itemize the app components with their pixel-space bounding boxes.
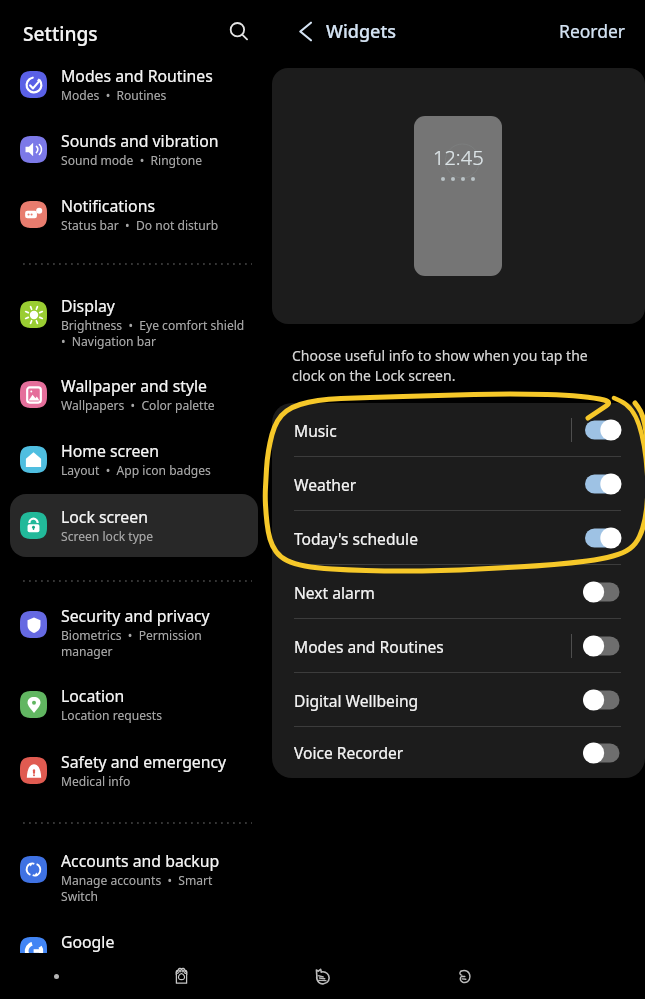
button[interactable]: Reorder: [555, 13, 630, 49]
button[interactable]: Recents: [163, 958, 199, 994]
button[interactable]: Back: [446, 958, 482, 994]
staticText: Brightness • Eye comfort shield: [61, 317, 245, 333]
staticText: Next alarm: [294, 582, 375, 603]
button[interactable]: Search: [219, 13, 259, 53]
staticText: Location requests: [61, 707, 162, 723]
staticText: 12:45: [433, 144, 484, 171]
button[interactable]: Wallpaper and style: [10, 363, 258, 426]
staticText: Sound mode • Ringtone: [61, 152, 203, 168]
staticText: Accounts and backup: [61, 850, 220, 872]
staticText: Biometrics • Permission: [61, 627, 202, 643]
staticText: Widgets: [326, 19, 397, 44]
staticText: Safety and emergency: [61, 751, 227, 773]
button[interactable]: Home screen: [10, 428, 258, 491]
button[interactable]: Today's schedule: [272, 511, 645, 565]
staticText: Manage accounts • Smart: [61, 872, 213, 888]
button[interactable]: Display: [10, 283, 258, 355]
button[interactable]: Google: [10, 919, 258, 982]
button[interactable]: Music: [272, 403, 645, 457]
staticText: Settings: [23, 20, 98, 46]
staticText: Security and privacy: [61, 605, 210, 627]
staticText: Voice Recorder: [294, 742, 404, 763]
button[interactable]: Security and privacy: [10, 593, 258, 665]
staticText: Choose useful info to show when you tap …: [292, 346, 588, 385]
staticText: Display: [61, 295, 115, 317]
staticText: Screen lock type: [61, 528, 154, 544]
staticText: Wallpaper and style: [61, 375, 207, 397]
button[interactable]: Back: [288, 14, 322, 48]
button[interactable]: Next alarm: [272, 565, 645, 619]
staticText: Reorder: [559, 19, 626, 43]
staticText: Location: [61, 685, 125, 707]
staticText: Digital Wellbeing: [294, 690, 419, 711]
staticText: Medical info: [61, 773, 131, 789]
staticText: Today's schedule: [294, 528, 418, 549]
button[interactable]: Accounts and backup: [10, 838, 258, 910]
button[interactable]: Notifications: [10, 183, 258, 246]
button[interactable]: Location: [10, 673, 258, 736]
staticText: Switch: [61, 888, 98, 904]
staticText: • Navigation bar: [61, 333, 156, 349]
staticText: Modes and Routines: [61, 65, 213, 87]
staticText: Layout • App icon badges: [61, 462, 211, 478]
button[interactable]: Lock screen: [10, 494, 258, 557]
staticText: Wallpapers • Color palette: [61, 397, 215, 413]
button[interactable]: Modes and Routines: [272, 619, 645, 673]
button[interactable]: Sounds and vibration: [10, 118, 258, 181]
staticText: Modes and Routines: [294, 636, 444, 657]
button[interactable]: Weather: [272, 457, 645, 511]
staticText: Home screen: [61, 440, 159, 462]
button[interactable]: Safety and emergency: [10, 739, 258, 802]
staticText: Lock screen: [61, 506, 148, 528]
staticText: Sounds and vibration: [61, 130, 219, 152]
staticText: manager: [61, 643, 113, 659]
button[interactable]: Page indicator: [38, 958, 74, 994]
staticText: Notifications: [61, 195, 155, 217]
staticText: Google: [61, 931, 115, 953]
button[interactable]: Digital Wellbeing: [272, 673, 645, 727]
staticText: Weather: [294, 474, 357, 495]
staticText: Modes • Routines: [61, 87, 167, 103]
staticText: Music: [294, 420, 337, 441]
staticText: Status bar • Do not disturb: [61, 217, 219, 233]
button[interactable]: Modes and Routines: [10, 53, 258, 116]
button[interactable]: Home: [304, 958, 340, 994]
button[interactable]: Voice Recorder: [272, 727, 645, 778]
